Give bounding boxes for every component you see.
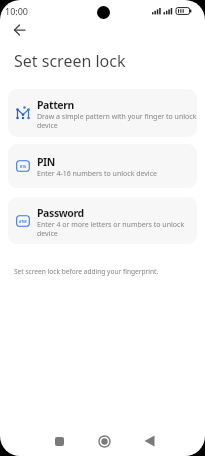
staticText: 816 <box>20 164 27 169</box>
button[interactable] <box>94 431 114 451</box>
button[interactable] <box>11 21 29 39</box>
staticText: Draw a simple pattern with your finger t… <box>37 112 197 130</box>
staticText: Set screen lock <box>14 50 126 72</box>
staticText: Set screen lock before adding your finge… <box>14 267 159 276</box>
button[interactable]: Pattern <box>8 89 197 137</box>
staticText: #TM <box>19 219 27 224</box>
staticText: Enter 4 or more letters or numbers to un… <box>37 220 185 238</box>
button[interactable] <box>49 431 69 451</box>
staticText: PIN <box>37 155 55 169</box>
button[interactable]: #TM <box>8 197 197 244</box>
button[interactable]: 816 <box>8 144 197 188</box>
staticText: 10:00 <box>5 5 29 17</box>
staticText: Pattern <box>37 98 74 112</box>
staticText: Password <box>37 206 84 220</box>
staticText: Enter 4-16 numbers to unlock device <box>37 169 157 179</box>
button[interactable] <box>139 431 159 451</box>
